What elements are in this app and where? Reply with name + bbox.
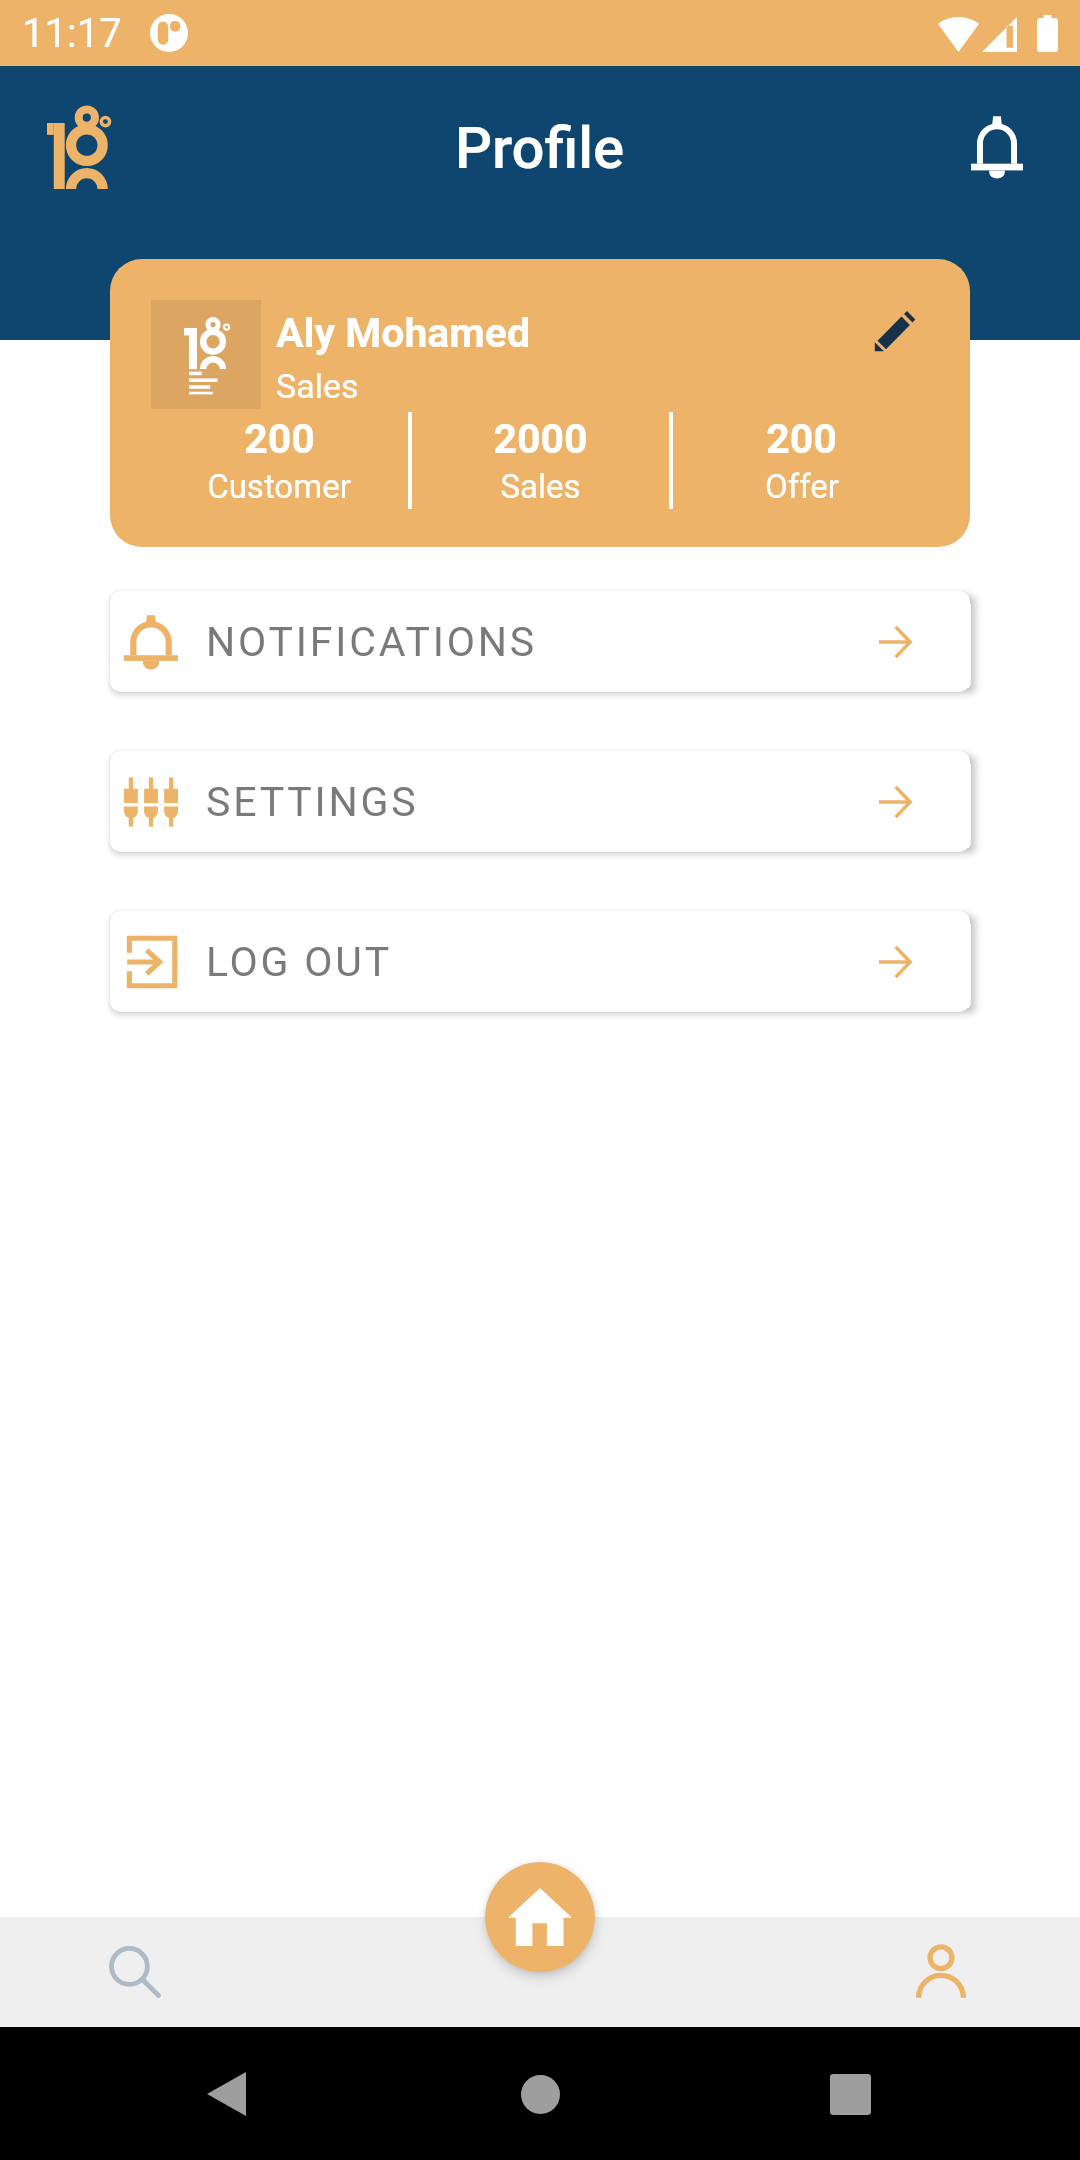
staticText: Sales (276, 366, 359, 406)
staticText: 200 (766, 415, 837, 463)
staticText: SETTINGS (206, 778, 419, 826)
staticText: Sales (500, 467, 581, 506)
staticText: 11:17 (22, 10, 122, 57)
button[interactable]: Edit profile (860, 296, 930, 366)
button[interactable]: Home (485, 1862, 595, 1972)
button[interactable]: Home (480, 2034, 600, 2154)
button[interactable]: Recents (790, 2034, 910, 2154)
staticText: Profile (455, 114, 625, 182)
button[interactable]: NOTIFICATIONS (110, 591, 970, 692)
button[interactable]: Aly Mohamed (110, 259, 970, 547)
button[interactable]: Back (166, 2034, 286, 2154)
staticText: NOTIFICATIONS (206, 618, 538, 666)
button[interactable]: LOG OUT (110, 911, 970, 1012)
staticText: LOG OUT (206, 938, 392, 986)
button[interactable]: Logo (47, 107, 106, 189)
button[interactable]: Search (80, 1917, 190, 2027)
staticText: Offer (765, 467, 839, 506)
staticText: 200 (244, 415, 315, 463)
button[interactable]: SETTINGS (110, 751, 970, 852)
staticText: 2000 (493, 415, 588, 463)
button[interactable]: Notifications (949, 100, 1045, 196)
staticText: Customer (207, 467, 351, 506)
button[interactable]: Profile (886, 1917, 996, 2027)
staticText: Aly Mohamed (276, 309, 531, 357)
